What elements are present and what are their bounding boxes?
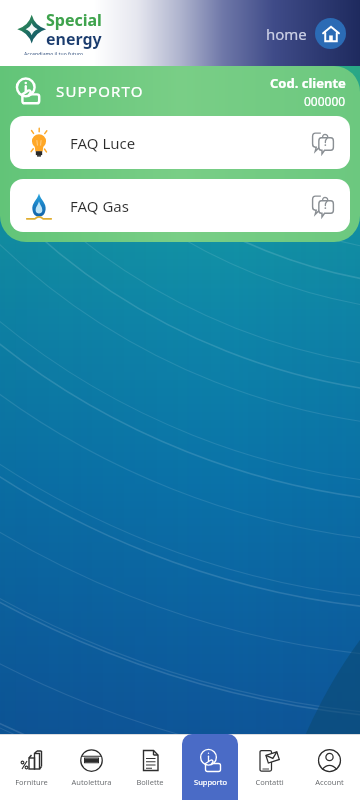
staticText: Special bbox=[46, 9, 102, 31]
button[interactable]: Autolettura bbox=[63, 734, 119, 800]
button[interactable]: Bollette bbox=[122, 734, 178, 800]
staticText: Bollette bbox=[136, 777, 164, 787]
staticText: Autolettura bbox=[71, 777, 112, 787]
staticText: SUPPORTO bbox=[56, 81, 144, 101]
staticText: 000000 bbox=[304, 93, 346, 109]
button[interactable]: home bbox=[266, 18, 346, 49]
staticText: home bbox=[266, 24, 307, 44]
button[interactable]: FAQ Luce bbox=[10, 116, 350, 169]
staticText: Account bbox=[315, 777, 344, 787]
staticText: Forniture bbox=[15, 777, 48, 787]
staticText: Contatti bbox=[255, 777, 284, 787]
button[interactable]: Forniture bbox=[3, 734, 59, 800]
button[interactable]: Contatti bbox=[241, 734, 297, 800]
staticText: Cod. cliente bbox=[270, 74, 346, 92]
staticText: Accendiamo il tuo futuro bbox=[24, 51, 84, 55]
staticText: FAQ Luce bbox=[70, 133, 136, 153]
staticText: FAQ Gas bbox=[70, 196, 129, 216]
staticText: Supporto bbox=[194, 777, 227, 787]
button[interactable]: FAQ Gas bbox=[10, 179, 350, 232]
button[interactable]: Special bbox=[14, 9, 118, 57]
button[interactable]: Account bbox=[301, 734, 357, 800]
staticText: energy bbox=[46, 28, 102, 50]
button[interactable]: Supporto bbox=[182, 734, 238, 800]
